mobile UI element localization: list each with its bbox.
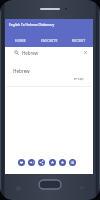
button[interactable]: English To Hebrew Dictionary: [5, 19, 93, 33]
staticText: RECENT: [72, 38, 86, 43]
button[interactable]: FAVORITE: [35, 33, 64, 47]
staticText: English To Hebrew Dictionary: [9, 22, 55, 26]
staticText: Hebrew: [13, 68, 30, 74]
button[interactable]: Share: [38, 159, 45, 166]
staticText: עברית: [74, 77, 84, 81]
button[interactable]: Clear search: [83, 50, 88, 55]
button[interactable]: HOME: [5, 33, 35, 47]
button[interactable]: Hebrew: [6, 59, 92, 86]
button[interactable]: Star: [59, 159, 66, 166]
staticText: Hebrew: [22, 50, 83, 56]
button[interactable]: Pronounce: [28, 159, 35, 166]
button[interactable]: Apps: [69, 159, 76, 166]
staticText: FAVORITE: [41, 38, 58, 43]
staticText: HOME: [15, 38, 26, 43]
button[interactable]: Rate: [49, 159, 56, 166]
button[interactable]: RECENT: [64, 33, 93, 47]
other: Recents: [16, 186, 21, 191]
other: Back: [80, 186, 85, 191]
button[interactable]: Favorite: [18, 159, 25, 166]
